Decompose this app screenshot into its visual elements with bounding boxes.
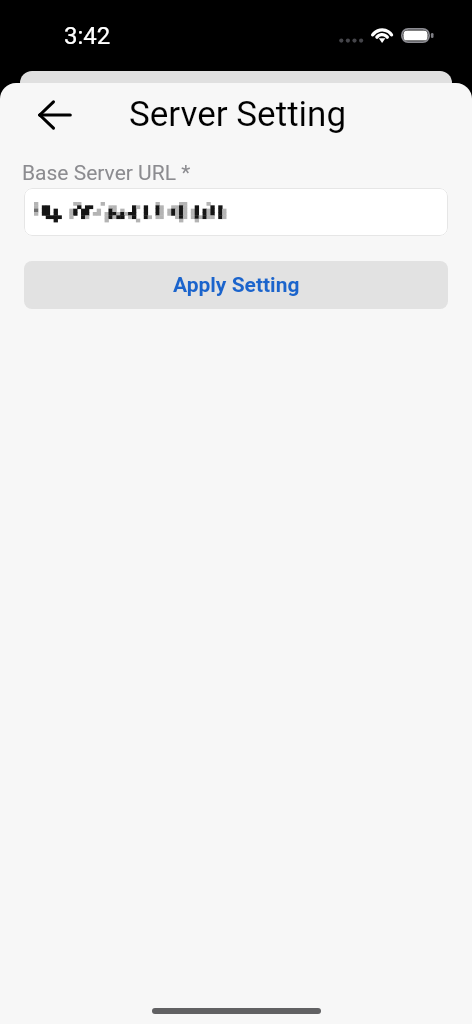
button[interactable]: Apply Setting bbox=[24, 261, 448, 309]
staticText: Server Setting bbox=[129, 94, 347, 135]
button[interactable]: Back bbox=[31, 93, 79, 137]
button[interactable] bbox=[24, 188, 448, 236]
staticText: 3:42 bbox=[64, 22, 111, 50]
staticText: Apply Setting bbox=[173, 273, 300, 298]
staticText: Base Server URL * bbox=[22, 161, 191, 186]
